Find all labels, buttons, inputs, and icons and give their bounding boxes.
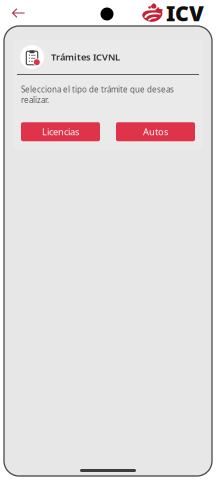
staticText: Trámites ICVNL — [51, 51, 120, 63]
button[interactable]: Licencias — [21, 122, 100, 141]
staticText: Licencias — [42, 126, 79, 138]
staticText: Selecciona el tipo de trámite que deseas… — [21, 84, 174, 105]
staticText: ICV — [166, 0, 204, 27]
staticText: Autos — [143, 126, 168, 138]
button[interactable]: Back — [8, 3, 28, 23]
button[interactable]: Autos — [116, 122, 195, 141]
